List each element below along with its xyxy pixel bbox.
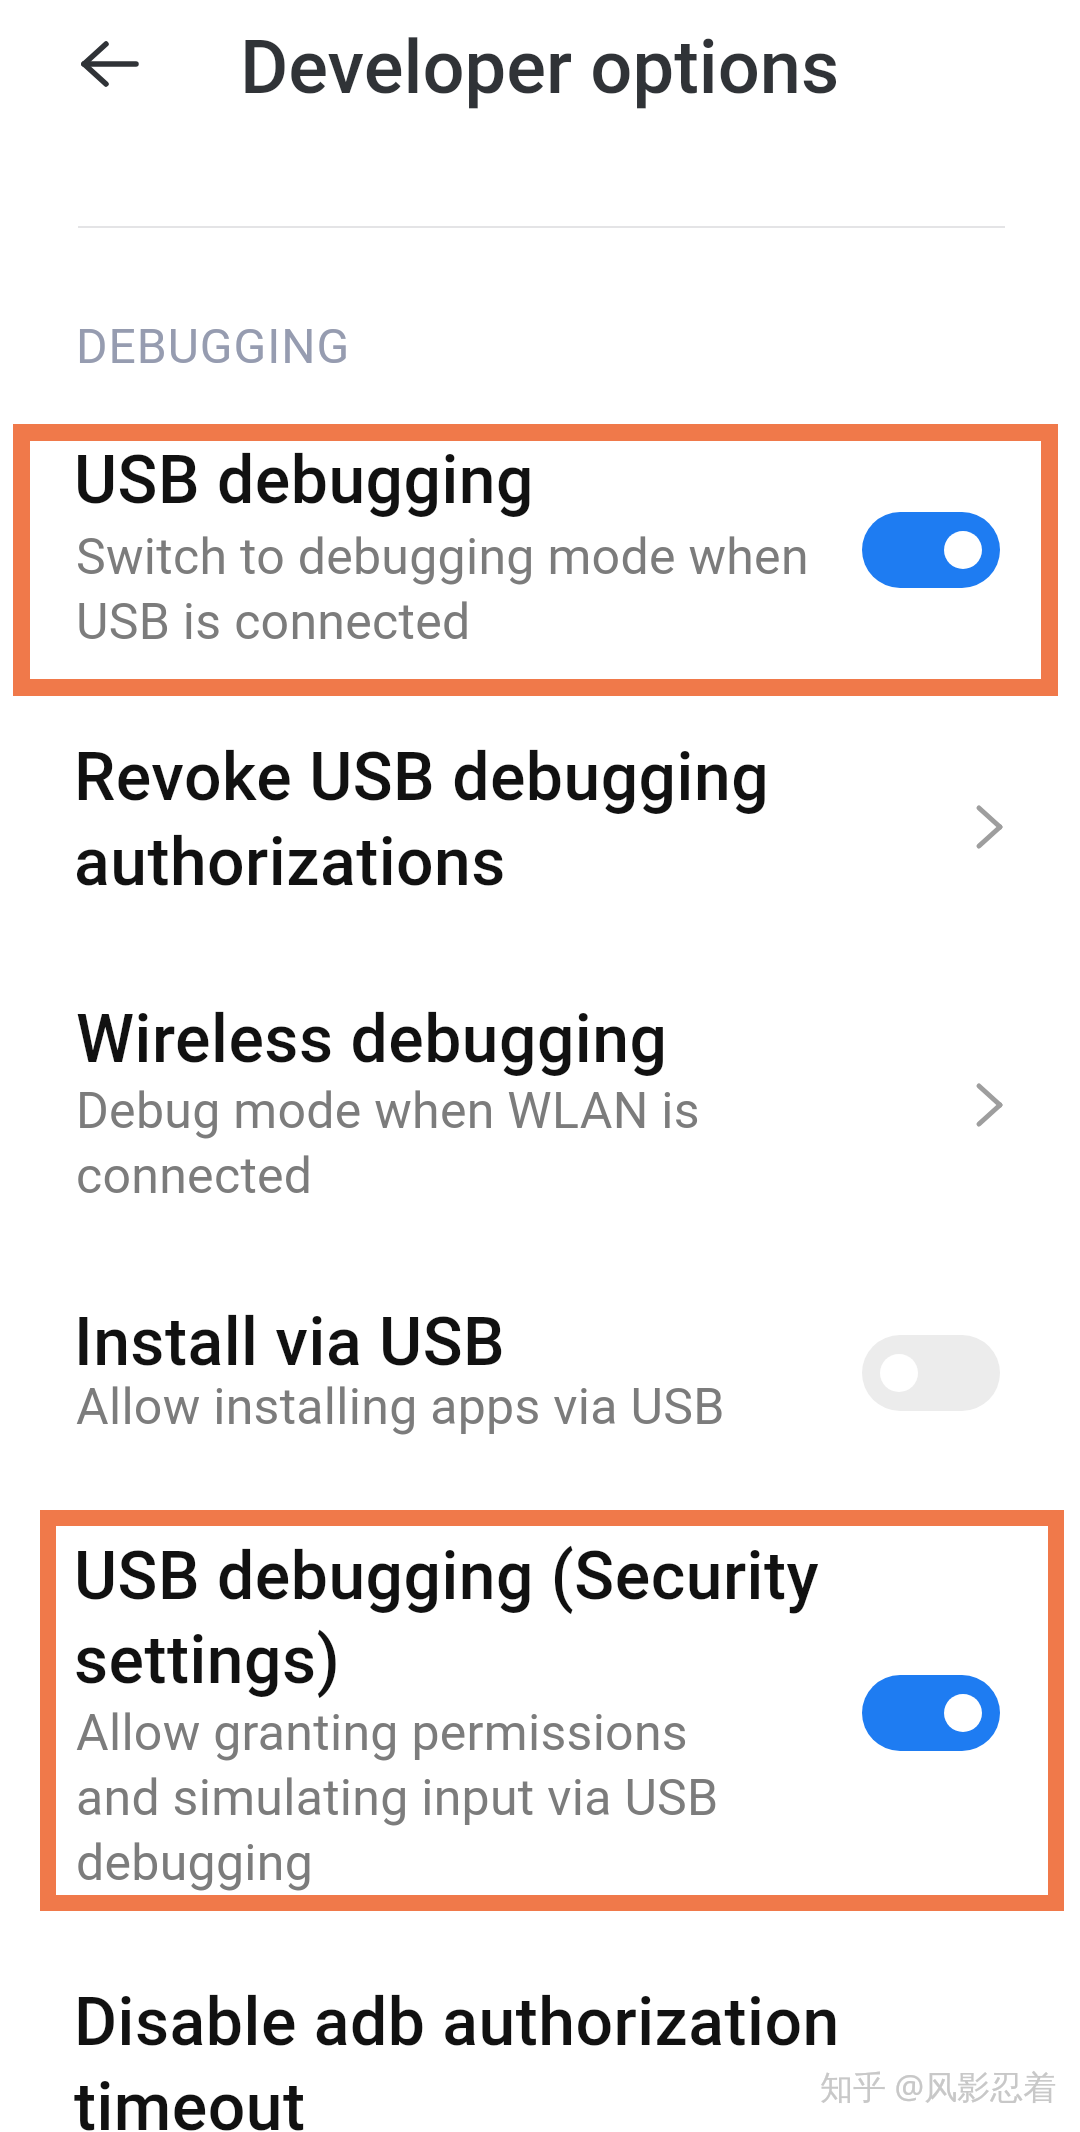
staticText: Developer options [240, 24, 840, 111]
staticText: Switch to debugging mode when USB is con… [76, 528, 809, 652]
staticText: Revoke USB debugging authorizations [74, 739, 770, 901]
button[interactable] [45, 740, 1026, 920]
staticText: Allow granting permissions and simulatin… [76, 1704, 719, 1892]
staticText: Wireless debugging [76, 1001, 668, 1078]
staticText: Debug mode when WLAN is connected [76, 1082, 700, 1205]
button[interactable] [45, 1302, 1026, 1462]
staticText: Install via USB [74, 1304, 506, 1381]
button[interactable] [82, 42, 138, 86]
button[interactable] [862, 512, 1000, 588]
staticText: DEBUGGING [76, 318, 351, 374]
staticText: Disable adb authorization timeout [74, 1984, 840, 2132]
button[interactable] [45, 996, 1026, 1216]
staticText: 知乎 @风影忍着 [820, 2064, 1057, 2109]
staticText: USB debugging [74, 442, 534, 519]
button[interactable] [45, 1982, 1026, 2132]
button[interactable] [862, 1675, 1000, 1751]
button[interactable] [45, 441, 1026, 679]
button[interactable] [862, 1335, 1000, 1411]
staticText: USB debugging (Security settings) [74, 1538, 820, 1699]
staticText: Allow installing apps via USB [76, 1378, 725, 1437]
button[interactable] [56, 1537, 1024, 1887]
